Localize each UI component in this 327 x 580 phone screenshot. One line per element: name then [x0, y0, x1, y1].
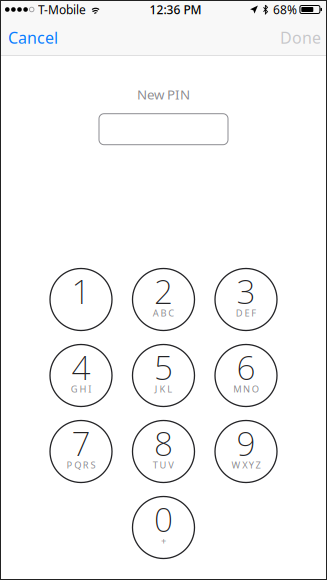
- button[interactable]: 2: [132, 268, 194, 330]
- staticText: 68%: [273, 1, 297, 17]
- staticText: F: [251, 307, 256, 319]
- staticText: P: [66, 459, 72, 471]
- button[interactable]: 6: [215, 344, 277, 406]
- staticText: 4: [71, 345, 90, 389]
- button[interactable]: 1: [50, 268, 112, 330]
- staticText: T-Mobile: [38, 1, 86, 17]
- staticText: T: [153, 459, 158, 471]
- staticText: A: [153, 307, 159, 319]
- staticText: 3: [236, 269, 255, 313]
- staticText: H: [79, 383, 86, 395]
- button[interactable]: 5: [132, 344, 194, 406]
- staticText: G: [71, 383, 78, 395]
- staticText: B: [160, 307, 166, 319]
- staticText: 6: [236, 345, 255, 389]
- button[interactable]: 4: [50, 344, 112, 406]
- staticText: V: [168, 459, 174, 471]
- staticText: +: [161, 535, 166, 547]
- button[interactable]: Done: [274, 19, 327, 56]
- staticText: N: [243, 383, 250, 395]
- staticText: I: [88, 383, 91, 395]
- staticText: Q: [74, 459, 81, 471]
- button[interactable]: 8: [132, 420, 194, 482]
- button[interactable]: 9: [215, 420, 277, 482]
- staticText: 8: [154, 421, 173, 465]
- staticText: E: [244, 307, 249, 319]
- staticText: Cancel: [8, 27, 58, 48]
- staticText: Y: [249, 459, 254, 471]
- staticText: 12:36 PM: [149, 1, 201, 17]
- button[interactable]: 3: [215, 268, 277, 330]
- staticText: W: [231, 459, 240, 471]
- staticText: R: [83, 459, 89, 471]
- staticText: New PIN: [137, 85, 190, 103]
- staticText: 2: [154, 269, 173, 313]
- staticText: Done: [280, 27, 321, 48]
- staticText: S: [90, 459, 95, 471]
- staticText: 1: [71, 269, 90, 313]
- button[interactable]: 7: [50, 420, 112, 482]
- staticText: D: [236, 307, 243, 319]
- staticText: C: [168, 307, 174, 319]
- button[interactable]: Cancel: [0, 19, 66, 56]
- staticText: X: [242, 459, 247, 471]
- staticText: Z: [255, 459, 260, 471]
- staticText: 7: [71, 421, 90, 465]
- staticText: 0: [154, 497, 173, 541]
- staticText: M: [233, 383, 241, 395]
- button[interactable]: 0: [132, 496, 194, 558]
- staticText: J: [155, 383, 158, 395]
- staticText: K: [159, 383, 165, 395]
- staticText: 9: [236, 421, 255, 465]
- staticText: 5: [154, 345, 173, 389]
- staticText: L: [167, 383, 172, 395]
- staticText: O: [252, 383, 259, 395]
- staticText: U: [159, 459, 166, 471]
